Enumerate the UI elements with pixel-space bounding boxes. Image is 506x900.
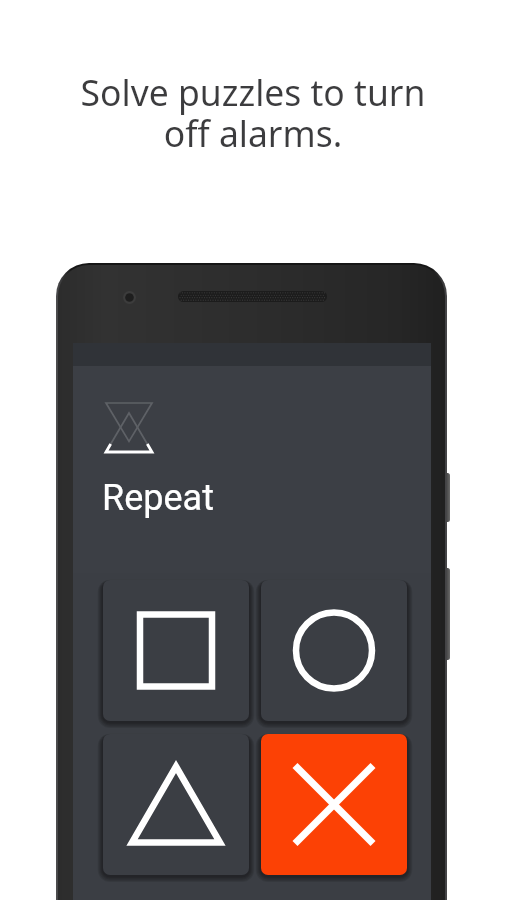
button[interactable]: Square [103,580,249,721]
button[interactable]: Cross [261,734,407,875]
button[interactable]: Triangle [103,734,249,875]
button[interactable]: Circle [261,580,407,721]
staticText: Repeat [102,477,214,519]
staticText: Solve puzzles to turn off alarms. [0,68,506,157]
